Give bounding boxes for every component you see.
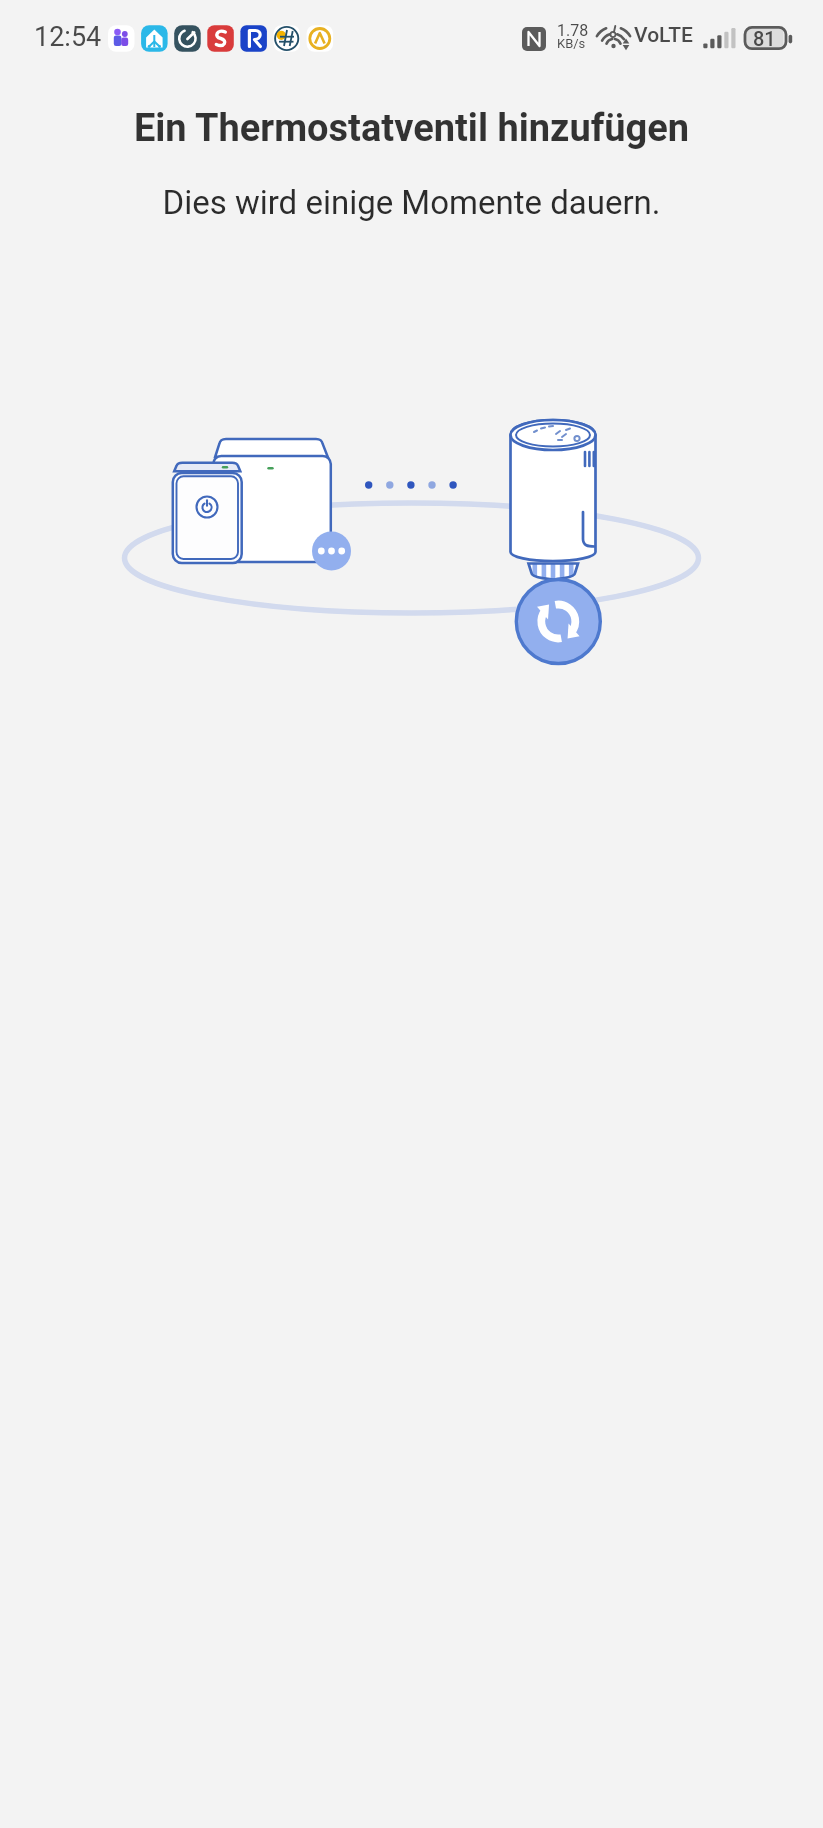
staticText: 1.78 [557,21,589,40]
staticText: 12:54 [34,21,102,53]
staticText: Dies wird einige Momente dauern. [0,183,823,222]
other: Illustration: Gateway verbindet sich mit… [0,0,823,1828]
staticText: KB/s [557,36,586,51]
staticText: Ein Thermostatventil hinzufügen [0,106,823,151]
staticText: 81 [753,27,776,50]
staticText: VoLTE [634,23,693,48]
